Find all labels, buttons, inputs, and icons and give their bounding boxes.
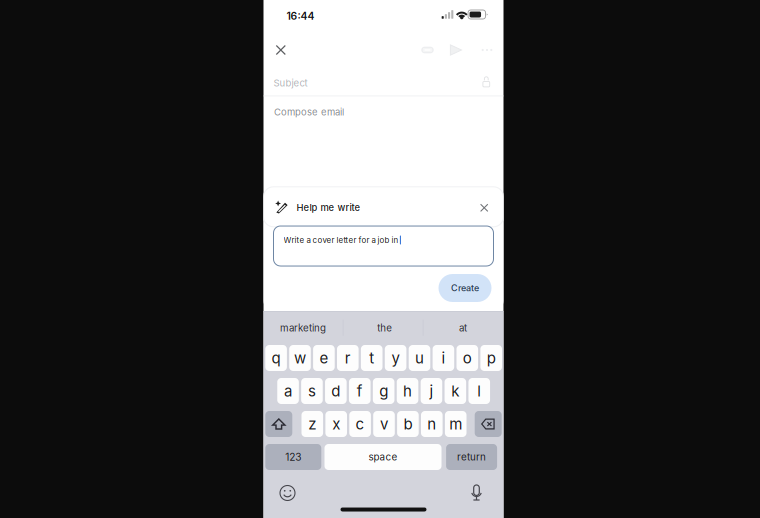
button[interactable]: n [421,411,443,437]
staticText: Help me write [296,202,360,213]
staticText: d [331,382,340,400]
staticText: t [369,349,374,367]
button[interactable]: d [325,378,347,404]
staticText: g [379,382,388,400]
button[interactable]: t [361,345,382,371]
button[interactable]: marketing [263,312,343,344]
staticText: k [451,382,459,400]
button[interactable]: space [324,444,441,470]
button[interactable]: i [433,345,454,371]
button[interactable]: at [423,312,503,344]
button[interactable]: Dictation [470,484,483,501]
staticText: v [380,415,388,433]
button[interactable]: c [349,411,371,437]
staticText: a [284,382,292,400]
staticText: at [459,322,467,334]
staticText: marketing [280,322,326,334]
button[interactable]: s [301,378,323,404]
staticText: r [345,349,351,367]
staticText: o [463,349,472,367]
staticText: p [487,349,496,367]
button[interactable]: q [265,345,287,371]
button[interactable]: k [445,378,466,404]
button[interactable]: Attach file [415,38,439,62]
staticText: return [457,451,486,463]
button[interactable]: 123 [265,444,321,470]
staticText: h [403,382,412,400]
button[interactable]: r [337,345,359,371]
staticText: q [272,349,281,367]
button[interactable]: the [345,312,425,344]
staticText: u [415,349,424,367]
staticText: b [403,415,412,433]
staticText: j [429,382,433,400]
button[interactable]: b [397,411,419,437]
staticText: space [368,451,397,463]
button[interactable]: Delete [475,411,502,437]
button[interactable]: x [325,411,347,437]
staticText: 123 [285,451,301,463]
staticText: z [308,415,316,433]
staticText: s [308,382,316,400]
staticText: y [392,349,400,367]
button[interactable]: Send [444,38,468,62]
button[interactable]: Close [269,38,293,62]
staticText: f [357,382,363,400]
button[interactable]: Emoji keyboard [280,485,295,500]
button[interactable]: h [397,378,418,404]
staticText: x [332,415,340,433]
button[interactable]: Dismiss help me write [473,197,495,219]
staticText: c [356,415,365,433]
staticText: Write a cover letter for a job in [283,235,398,245]
button[interactable]: z [301,411,323,437]
staticText: i [441,349,445,367]
button[interactable]: v [373,411,395,437]
button[interactable]: o [456,345,478,371]
staticText: 16:44 [286,10,314,22]
button[interactable]: Shift [265,411,292,437]
button[interactable]: f [349,378,370,404]
staticText: w [294,349,306,367]
button[interactable]: a [277,378,299,404]
button[interactable]: w [289,345,311,371]
staticText: e [319,349,328,367]
staticText: Create [451,283,479,293]
button[interactable]: e [313,345,335,371]
staticText: Compose email [274,106,344,118]
staticText: l [477,382,481,400]
button[interactable]: u [409,345,430,371]
staticText: n [427,415,436,433]
button[interactable]: g [373,378,394,404]
staticText: the [377,322,392,334]
staticText: Subject [274,77,308,89]
button[interactable]: p [480,345,502,371]
button[interactable]: y [385,345,406,371]
button[interactable]: m [445,411,466,437]
button[interactable]: Create [438,274,491,302]
button[interactable]: l [468,378,490,404]
staticText: m [449,415,462,433]
button[interactable]: j [421,378,442,404]
button[interactable]: return [446,444,497,470]
